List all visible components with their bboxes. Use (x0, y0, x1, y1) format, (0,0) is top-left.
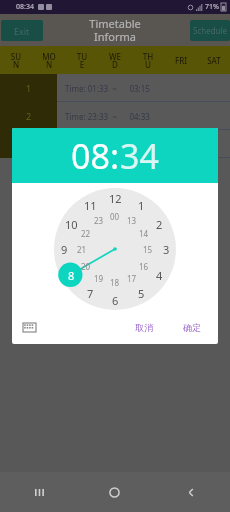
button[interactable]: 11 (84, 198, 97, 213)
button[interactable]: 19 (94, 273, 104, 284)
staticText: SAT (207, 55, 221, 66)
button[interactable]: 16 (139, 261, 149, 272)
staticText: 1 (26, 82, 32, 94)
button[interactable]: Time: 23:33 ~ 04:33 (57, 102, 230, 130)
staticText: Time: 23:33 ~ 04:33 (65, 111, 150, 122)
button[interactable]: 17 (127, 273, 137, 284)
staticText: 取消 (135, 322, 153, 333)
button[interactable]: 2 (156, 217, 163, 232)
button[interactable]: 3 (163, 242, 170, 257)
staticText: Time: 01:33 ~ 03:15 (65, 83, 150, 94)
button[interactable]: 21 (77, 244, 87, 255)
button[interactable]: Exit (1, 20, 43, 41)
button[interactable]: 12 (109, 191, 122, 206)
button[interactable]: 00 (110, 211, 120, 222)
staticText: TUE (75, 51, 89, 70)
button[interactable]: 34 (120, 133, 159, 179)
button[interactable]: 确定 (175, 319, 209, 336)
button[interactable]: Schedule (190, 20, 230, 41)
staticText: Schedule (193, 25, 228, 36)
button[interactable]: 6 (112, 293, 119, 308)
button[interactable]: 10 (65, 217, 78, 232)
button[interactable]: 20 (81, 261, 91, 272)
button[interactable]: 18 (110, 277, 120, 288)
button[interactable]: Time: 01:33 ~ 03:15 (57, 74, 230, 102)
button[interactable]: Back (153, 472, 230, 512)
button[interactable]: 14 (139, 228, 149, 239)
button[interactable]: 1 (138, 198, 145, 213)
button[interactable]: 5 (138, 286, 145, 301)
button[interactable]: 22 (81, 228, 91, 239)
staticText: FRI (174, 55, 188, 66)
button[interactable]: 9 (61, 242, 68, 257)
button[interactable]: 8 (68, 268, 75, 283)
button[interactable]: 08 (71, 133, 110, 179)
staticText: Exit (14, 25, 30, 37)
staticText: Time: 23:33 ~ 04:33 (65, 139, 150, 150)
button[interactable]: Home (76, 472, 153, 512)
staticText: THU (141, 51, 155, 70)
staticText: : (110, 133, 120, 179)
button[interactable]: 15 (143, 244, 153, 255)
staticText: MON (42, 51, 56, 70)
button[interactable]: 7 (87, 286, 94, 301)
button[interactable]: 取消 (127, 319, 161, 336)
staticText: Timetable Informa (84, 16, 146, 44)
button[interactable]: 13 (127, 215, 137, 226)
button[interactable]: 23 (94, 215, 104, 226)
button[interactable]: Recents (0, 472, 76, 512)
staticText: WED (108, 51, 122, 70)
staticText: 2 (26, 110, 32, 122)
button[interactable]: Time: 23:33 ~ 04:33 (57, 130, 230, 158)
button[interactable]: 4 (156, 268, 163, 283)
staticText: 71% (205, 2, 219, 12)
staticText: 确定 (183, 322, 201, 333)
button[interactable]: Switch to text input (21, 319, 37, 335)
staticText: 08:34 (16, 2, 34, 12)
staticText: SUN (9, 51, 23, 70)
